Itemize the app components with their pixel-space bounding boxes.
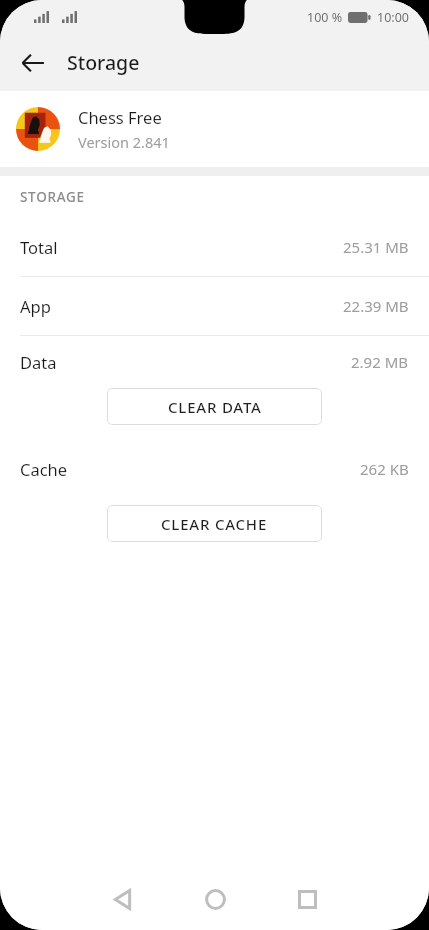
button[interactable]: Back [11,41,55,85]
staticText: STORAGE [20,188,85,206]
button[interactable]: Data [0,336,429,388]
staticText: 100 % [307,9,343,26]
staticText: Cache [20,458,68,480]
button[interactable]: Cache [0,449,429,489]
staticText: Storage [67,49,140,76]
button[interactable]: CLEAR DATA [107,388,322,425]
staticText: 25.31 MB [343,237,409,257]
button[interactable]: CLEAR CACHE [107,505,322,542]
staticText: Total [20,236,58,258]
staticText: 2.92 MB [351,352,409,372]
staticText: CLEAR CACHE [161,514,268,534]
staticText: 262 KB [360,459,409,479]
staticText: 22.39 MB [343,296,409,316]
button[interactable]: App [0,277,429,335]
staticText: CLEAR DATA [168,397,262,417]
button[interactable]: Total [0,218,429,276]
button[interactable]: Chess Free [0,91,429,167]
staticText: Data [20,351,57,373]
staticText: 10:00 [377,9,409,26]
staticText: Version 2.841 [78,132,170,152]
button[interactable]: Back [99,876,145,922]
staticText: App [20,295,51,317]
button[interactable]: Home [192,876,238,922]
button[interactable]: Recent apps [284,876,330,922]
staticText: Chess Free [78,106,162,128]
